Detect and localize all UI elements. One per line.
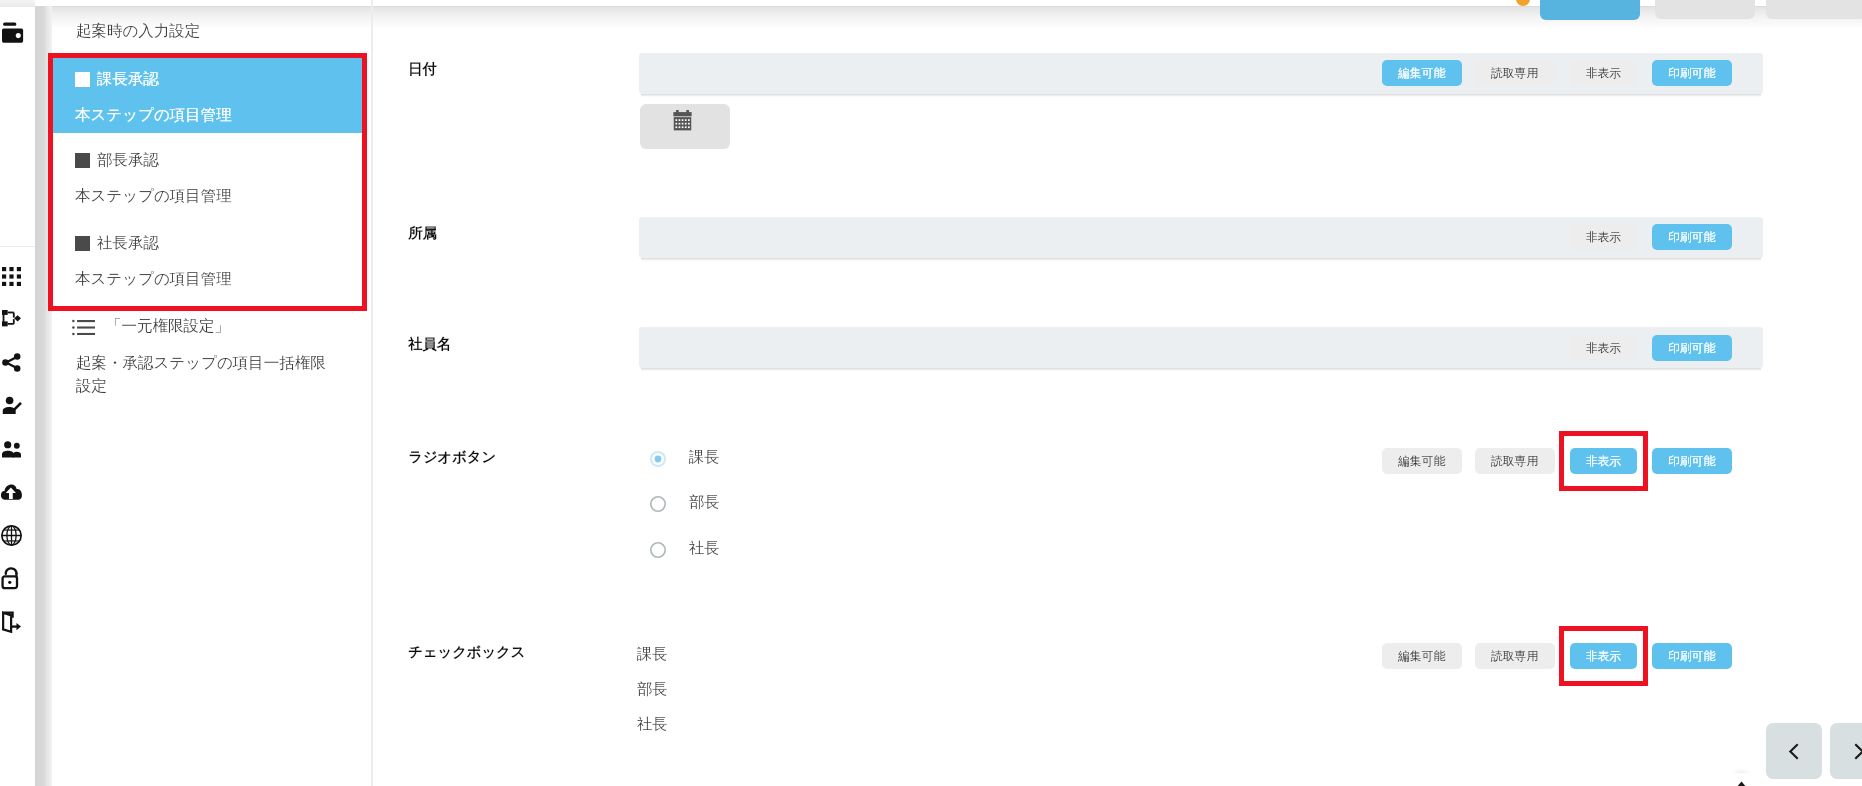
staticText: 設定	[76, 376, 107, 396]
button[interactable]: 非表示	[1570, 448, 1637, 474]
staticText: チェックボックス	[408, 643, 526, 661]
staticText: 印刷可能	[1668, 649, 1716, 664]
button[interactable]: 社長	[645, 537, 755, 563]
button[interactable]: Previous page	[1766, 723, 1822, 779]
button[interactable]: 読取専用	[1475, 643, 1555, 669]
button[interactable]: Wallet	[0, 15, 28, 45]
staticText: 読取専用	[1491, 66, 1539, 81]
button[interactable]: 「一元権限設定」	[52, 311, 371, 341]
button[interactable]: Apps	[0, 255, 22, 297]
staticText: 編集可能	[1398, 649, 1446, 664]
staticText: 非表示	[1586, 454, 1622, 469]
button[interactable]: 編集可能	[1382, 643, 1462, 669]
staticText: 印刷可能	[1668, 230, 1716, 245]
button[interactable]: 編集可能	[1382, 448, 1462, 474]
button[interactable]: 非表示	[1570, 643, 1637, 669]
button[interactable]: 読取専用	[1475, 60, 1555, 86]
button[interactable]: 課長	[645, 446, 755, 472]
staticText: 部長承認	[97, 150, 159, 170]
button[interactable]: 編集可能	[1382, 60, 1462, 86]
button[interactable]: 読取専用	[1475, 448, 1555, 474]
button[interactable]: Users	[0, 428, 22, 470]
button[interactable]: Logout	[0, 600, 22, 642]
staticText: 非表示	[1586, 66, 1622, 81]
button[interactable]: Calendar	[640, 104, 730, 149]
button[interactable]: Save	[1540, 0, 1640, 20]
button[interactable]: 印刷可能	[1652, 60, 1732, 86]
staticText: ラジオボタン	[408, 448, 496, 466]
staticText: 起案・承認ステップの項目一括権限	[76, 353, 326, 373]
staticText: 課長	[637, 644, 668, 663]
staticText: 編集可能	[1398, 66, 1446, 81]
staticText: 課長承認	[97, 69, 159, 89]
button[interactable]: Language	[0, 514, 22, 556]
button[interactable]: Edit user	[0, 384, 22, 426]
staticText: 社員名	[408, 335, 451, 353]
staticText: 所属	[408, 224, 437, 242]
staticText: 起案時の入力設定	[76, 21, 201, 41]
staticText: 「一元権限設定」	[106, 316, 230, 336]
button[interactable]: 非表示	[1570, 335, 1637, 361]
button[interactable]: 印刷可能	[1652, 335, 1732, 361]
staticText: 社長	[689, 538, 720, 557]
button[interactable]	[53, 218, 367, 305]
button[interactable]: Upload	[0, 471, 22, 513]
staticText: 本ステップの項目管理	[75, 186, 232, 206]
staticText: 本ステップの項目管理	[75, 269, 232, 289]
staticText: 本ステップの項目管理	[75, 105, 232, 125]
button[interactable]: 印刷可能	[1652, 224, 1732, 250]
staticText: 読取専用	[1491, 454, 1539, 469]
button[interactable]: Next page	[1830, 723, 1862, 779]
staticText: 部長	[637, 679, 668, 698]
staticText: 社長承認	[97, 233, 159, 253]
button[interactable]: Scroll to top	[1719, 773, 1764, 786]
button[interactable]: Workflow	[0, 298, 22, 340]
button[interactable]: 部長	[645, 491, 755, 517]
staticText: 日付	[408, 60, 437, 78]
staticText: 非表示	[1586, 341, 1622, 356]
button[interactable]: Security	[0, 557, 22, 599]
staticText: 印刷可能	[1668, 66, 1716, 81]
staticText: 印刷可能	[1668, 454, 1716, 469]
button[interactable]: 非表示	[1570, 60, 1637, 86]
button[interactable]: 非表示	[1570, 224, 1637, 250]
button[interactable]	[53, 133, 367, 218]
button[interactable]	[53, 55, 367, 133]
staticText: 部長	[689, 492, 720, 511]
staticText: 印刷可能	[1668, 341, 1716, 356]
staticText: 非表示	[1586, 230, 1622, 245]
staticText: 編集可能	[1398, 454, 1446, 469]
staticText: 社長	[637, 714, 668, 733]
button[interactable]: 印刷可能	[1652, 643, 1732, 669]
staticText: 非表示	[1586, 649, 1622, 664]
button[interactable]: Share	[0, 341, 22, 383]
staticText: 読取専用	[1491, 649, 1539, 664]
button[interactable]: 印刷可能	[1652, 448, 1732, 474]
staticText: 課長	[689, 447, 720, 466]
